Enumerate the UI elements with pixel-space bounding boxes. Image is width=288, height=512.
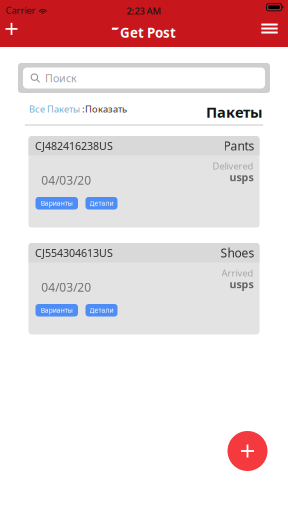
staticText: Get Post [120,24,176,41]
staticText: 2:23 AM [126,5,161,17]
staticText: :Показать [82,103,127,115]
staticText: Варианты [41,306,73,315]
staticText: Все Пакеты [29,103,82,115]
button[interactable]: Menu [250,18,288,47]
button[interactable]: Детали [85,304,117,316]
button[interactable]: Варианты [35,304,78,316]
staticText: usps [229,277,253,291]
button[interactable]: Детали [85,197,117,209]
staticText: Детали [89,199,113,208]
staticText: 04/03/20 [41,172,91,188]
staticText: Варианты [41,199,73,208]
staticText: Delivered [212,160,253,172]
button[interactable]: Add package [227,431,267,471]
staticText: Arrived [221,267,253,279]
staticText: CJ482416238US [35,139,113,153]
staticText: 04/03/20 [41,279,91,295]
staticText: CJ554304613US [35,246,113,260]
button[interactable]: Add package [0,18,23,47]
staticText: Pants [223,138,254,154]
staticText: Shoes [220,245,254,261]
staticText: Пакеты [206,102,263,122]
staticText: usps [229,170,253,184]
button[interactable]: Варианты [35,197,78,209]
staticText: Carrier [5,4,35,16]
staticText: Детали [89,306,113,315]
button[interactable]: Search [18,63,270,93]
button[interactable]: Все Пакеты [29,102,127,116]
staticText: Поиск [45,71,77,85]
